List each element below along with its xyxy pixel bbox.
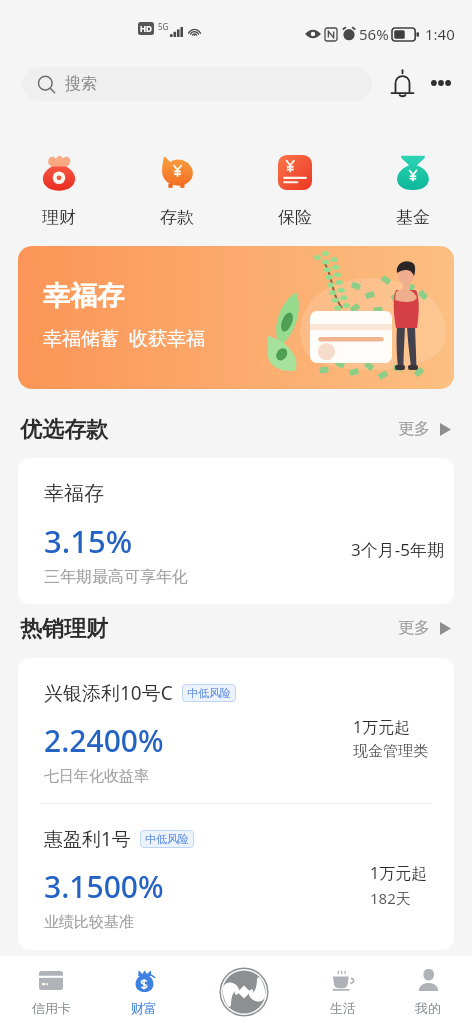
button[interactable]: 更多 <box>390 611 459 645</box>
button[interactable]: 基金 <box>354 153 472 228</box>
staticText: 更多 <box>398 618 430 638</box>
button[interactable]: 惠盈利1号 <box>18 804 454 950</box>
staticText: 财富 <box>131 1000 157 1016</box>
staticText: 业绩比较基准 <box>44 913 134 932</box>
button[interactable]: 幸福存 <box>18 458 454 604</box>
staticText: 3.15% <box>44 520 133 562</box>
staticText: 生活 <box>330 1000 356 1016</box>
button[interactable]: More options <box>425 67 457 99</box>
button[interactable]: 保险 <box>236 153 354 228</box>
staticText: 5G <box>158 21 169 32</box>
staticText: 幸福存 <box>43 279 124 313</box>
staticText: 搜索 <box>65 74 97 94</box>
button[interactable]: 生活 <box>305 968 381 1016</box>
staticText: 三年期最高可享年化 <box>44 567 188 587</box>
button[interactable]: 更多 <box>390 412 459 446</box>
staticText: 56% <box>359 24 389 44</box>
staticText: 惠盈利1号 <box>44 826 131 852</box>
staticText: 优选存款 <box>20 416 108 444</box>
staticText: 热销理财 <box>20 615 108 643</box>
button[interactable]: 信用卡 <box>13 968 89 1016</box>
staticText: 存款 <box>160 207 194 228</box>
button[interactable]: 幸福存 <box>18 246 454 389</box>
button[interactable]: 财富 <box>106 968 182 1016</box>
staticText: 182天 <box>370 888 411 908</box>
staticText: 我的 <box>415 1000 441 1016</box>
staticText: 1万元起 <box>353 716 411 738</box>
staticText: 1万元起 <box>370 862 428 884</box>
button[interactable]: 我的 <box>390 968 466 1016</box>
staticText: 基金 <box>396 207 430 228</box>
staticText: 保险 <box>278 207 312 228</box>
staticText: 1:40 <box>425 24 455 44</box>
staticText: 3个月-5年期 <box>351 538 444 561</box>
button[interactable]: 理财 <box>0 153 118 228</box>
staticText: 现金管理类 <box>353 742 428 761</box>
staticText: 幸福存 <box>44 481 104 506</box>
staticText: 兴银添利10号C <box>44 680 173 706</box>
staticText: 3.1500% <box>44 866 164 907</box>
button[interactable]: 存款 <box>118 153 236 228</box>
staticText: 2.2400% <box>44 720 164 761</box>
button[interactable]: 搜索 <box>22 67 372 101</box>
staticText: 中低风险 <box>145 832 189 846</box>
button[interactable]: 兴银添利10号C <box>18 658 454 804</box>
staticText: 更多 <box>398 419 430 439</box>
staticText: HD <box>140 23 152 34</box>
button[interactable]: Notifications <box>386 67 419 100</box>
button[interactable]: Home <box>216 964 272 1020</box>
staticText: 幸福储蓄 收获幸福 <box>43 325 205 351</box>
staticText: 七日年化收益率 <box>44 767 149 786</box>
staticText: 理财 <box>42 207 76 228</box>
staticText: 信用卡 <box>32 1000 71 1016</box>
staticText: 中低风险 <box>187 686 231 700</box>
